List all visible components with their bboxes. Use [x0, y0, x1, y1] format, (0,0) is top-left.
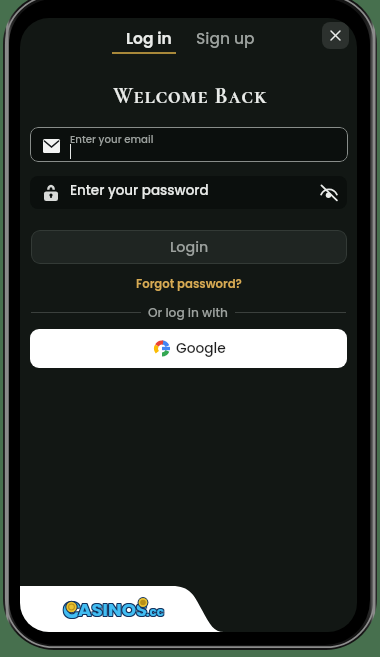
staticText: Log in — [126, 28, 172, 50]
button[interactable]: Close — [322, 22, 349, 49]
staticText: Forgot password? — [136, 276, 242, 292]
staticText: Sign up — [196, 28, 255, 50]
staticText: Google — [176, 339, 226, 358]
staticText: Enter your email — [70, 132, 154, 146]
staticText: Or log in with — [148, 304, 228, 321]
button[interactable]: Log in — [118, 24, 180, 54]
staticText: Enter your password — [70, 181, 209, 200]
button[interactable]: Enter your email — [30, 127, 348, 162]
button[interactable]: Google — [30, 329, 347, 368]
button[interactable]: Show password — [312, 176, 345, 209]
button[interactable]: Sign up — [190, 24, 260, 54]
button[interactable]: Login — [31, 230, 347, 264]
staticText: Welcome Back — [113, 83, 268, 110]
button[interactable]: Forgot password? — [130, 273, 248, 295]
staticText: Login — [170, 237, 209, 257]
button[interactable]: Enter your password — [30, 176, 347, 209]
